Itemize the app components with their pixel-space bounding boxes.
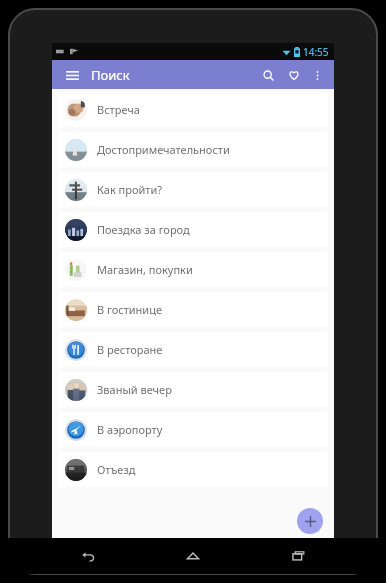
staticText: В ресторане (97, 342, 163, 357)
staticText: Достопримечательности (97, 142, 230, 157)
button[interactable]: Favorites (283, 64, 305, 86)
button[interactable]: Званый вечер (58, 372, 328, 407)
button[interactable]: Search (257, 64, 279, 86)
button[interactable]: Home (176, 539, 210, 573)
staticText: Отъезд (97, 462, 136, 477)
button[interactable]: Встреча (58, 92, 328, 127)
button[interactable]: More options (307, 65, 327, 85)
button[interactable]: Достопримечательности (58, 132, 328, 167)
staticText: В гостинице (97, 302, 162, 317)
button[interactable]: В аэропорту (58, 412, 328, 447)
staticText: Магазин, покупки (97, 262, 193, 277)
button[interactable]: Recents (281, 539, 315, 573)
staticText: 14:55 (303, 45, 329, 59)
button[interactable]: Отъезд (58, 452, 328, 487)
button[interactable]: Магазин, покупки (58, 252, 328, 287)
staticText: Как пройти? (97, 182, 163, 197)
button[interactable]: Add (297, 508, 323, 534)
button[interactable]: Поездка за город (58, 212, 328, 247)
button[interactable]: Menu (61, 64, 83, 86)
button[interactable]: Back (71, 539, 105, 573)
staticText: Поездка за город (97, 222, 190, 237)
staticText: В аэропорту (97, 422, 163, 437)
staticText: Встреча (97, 102, 140, 117)
button[interactable]: В гостинице (58, 292, 328, 327)
button[interactable]: Как пройти? (58, 172, 328, 207)
staticText: Поиск (91, 66, 130, 84)
staticText: Званый вечер (97, 382, 172, 397)
button[interactable]: В ресторане (58, 332, 328, 367)
